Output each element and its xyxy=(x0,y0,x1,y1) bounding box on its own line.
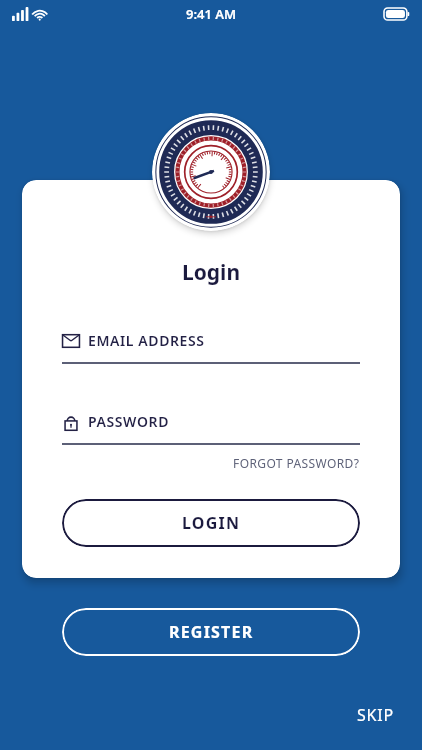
staticText: EMAIL ADDRESS xyxy=(88,331,205,350)
staticText: PASSWORD xyxy=(88,412,169,431)
staticText: 9:41 AM xyxy=(186,5,237,23)
staticText: REGISTER xyxy=(169,621,254,643)
button[interactable]: SKIP xyxy=(351,698,400,732)
button[interactable]: REGISTER xyxy=(62,608,360,656)
staticText: LOGIN xyxy=(182,512,241,534)
button[interactable]: EMAIL ADDRESS xyxy=(22,331,400,364)
button[interactable]: LOGIN xyxy=(62,499,360,547)
staticText: SKIP xyxy=(357,704,394,726)
button[interactable]: FORGOT PASSWORD? xyxy=(22,455,360,471)
staticText: Login xyxy=(22,258,400,287)
button[interactable]: PASSWORD xyxy=(22,412,400,445)
staticText: FORGOT PASSWORD? xyxy=(233,455,360,471)
